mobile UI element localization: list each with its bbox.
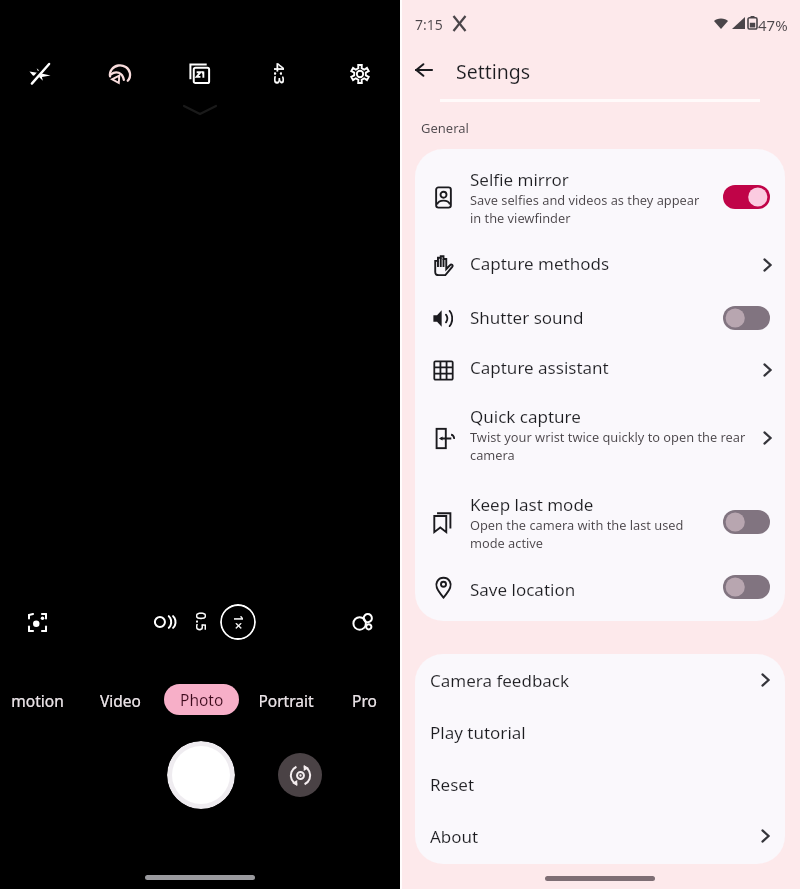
button[interactable]: Selfie mirror: [415, 149, 785, 245]
staticText: Play tutorial: [430, 721, 526, 744]
staticText: General: [421, 119, 469, 137]
button[interactable]: Lens: [17, 602, 57, 642]
staticText: Selfie mirror: [470, 168, 569, 191]
button[interactable]: Settings: [340, 54, 380, 94]
button[interactable]: Toggle: [723, 575, 770, 599]
staticText: Save location: [470, 578, 576, 601]
button[interactable]: Shutter: [167, 741, 235, 809]
button[interactable]: Toggle: [723, 306, 770, 330]
button[interactable]: Toggle: [723, 185, 770, 209]
button[interactable]: Capture assistant: [415, 341, 785, 393]
staticText: 4:3: [270, 63, 290, 85]
button[interactable]: motion: [2, 684, 72, 716]
button[interactable]: Effects: [345, 604, 381, 640]
button[interactable]: Night mode: [100, 54, 140, 94]
staticText: Photo: [180, 689, 224, 710]
button[interactable]: Keep last mode: [415, 483, 785, 562]
button[interactable]: Ultra wide: [144, 602, 184, 642]
button[interactable]: Portrait: [246, 684, 326, 716]
staticText: Capture methods: [470, 252, 610, 275]
staticText: Quick capture: [470, 405, 581, 428]
staticText: Capture assistant: [470, 356, 609, 379]
staticText: Twist your wrist twice quickly to open t…: [470, 428, 746, 464]
staticText: Shutter sound: [470, 306, 584, 329]
button[interactable]: Pro: [336, 684, 392, 716]
staticText: 47%: [758, 15, 788, 35]
button[interactable]: Top shot: [180, 54, 220, 94]
button[interactable]: About: [415, 810, 785, 862]
button[interactable]: Back: [404, 50, 444, 90]
button[interactable]: Flash off: [20, 54, 60, 94]
button[interactable]: Toggle: [723, 510, 770, 534]
button[interactable]: Aspect ratio 4 by 3: [260, 54, 300, 94]
button[interactable]: Shutter sound: [415, 291, 785, 343]
button[interactable]: Reset: [415, 758, 785, 810]
button[interactable]: Photo: [164, 684, 239, 715]
staticText: Save selfies and videos as they appear i…: [470, 191, 700, 227]
button[interactable]: Save location: [415, 561, 785, 617]
button[interactable]: 0.5: [184, 605, 218, 639]
staticText: 7:15: [415, 15, 443, 34]
button[interactable]: Capture methods: [415, 238, 785, 288]
button[interactable]: Play tutorial: [415, 706, 785, 758]
staticText: Settings: [456, 58, 531, 85]
button[interactable]: Quick capture: [415, 395, 785, 474]
staticText: Pro: [352, 690, 377, 711]
staticText: Portrait: [258, 690, 314, 711]
button[interactable]: Camera feedback: [415, 654, 785, 706]
staticText: 0.5: [192, 612, 210, 632]
button[interactable]: 1×: [220, 604, 256, 640]
staticText: Camera feedback: [430, 669, 570, 692]
button[interactable]: Switch camera: [278, 753, 322, 797]
staticText: Keep last mode: [470, 493, 594, 516]
staticText: Open the camera with the last used mode …: [470, 516, 684, 552]
staticText: motion: [11, 690, 64, 711]
staticText: Reset: [430, 773, 475, 796]
staticText: Video: [100, 690, 141, 711]
staticText: About: [430, 825, 479, 848]
button[interactable]: Video: [85, 684, 155, 716]
staticText: 1×: [230, 615, 247, 630]
